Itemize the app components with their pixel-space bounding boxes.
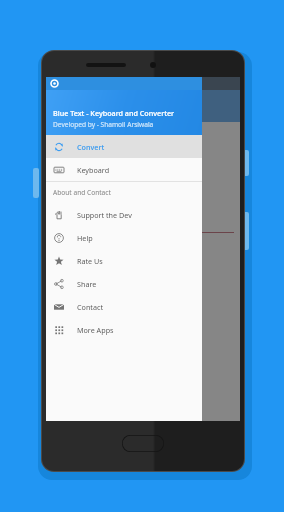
- staticText: Keyboard: [77, 165, 110, 175]
- staticText: Share: [77, 279, 97, 289]
- staticText: T: [162, 178, 169, 193]
- button[interactable]: Keyboard: [46, 158, 202, 181]
- staticText: Contact: [77, 302, 104, 312]
- staticText: Rate Us: [77, 256, 103, 266]
- button[interactable]: Share: [46, 272, 202, 295]
- staticText: Support the Dev: [77, 210, 132, 220]
- button[interactable]: Support the Dev: [46, 203, 202, 226]
- staticText: Help: [77, 233, 93, 243]
- staticText: Convert: [77, 142, 105, 152]
- button[interactable]: Convert: [46, 135, 202, 158]
- button[interactable]: Help: [46, 226, 202, 249]
- button[interactable]: Rate Us: [46, 249, 202, 272]
- staticText: More Apps: [77, 325, 114, 335]
- staticText: Developed by - Shamoil Arsiwala: [53, 120, 154, 129]
- button[interactable]: More Apps: [46, 318, 202, 341]
- staticText: Blue Text - Keyboard and Converter: [53, 108, 175, 118]
- staticText: About and Contact: [53, 188, 111, 197]
- button[interactable]: Contact: [46, 295, 202, 318]
